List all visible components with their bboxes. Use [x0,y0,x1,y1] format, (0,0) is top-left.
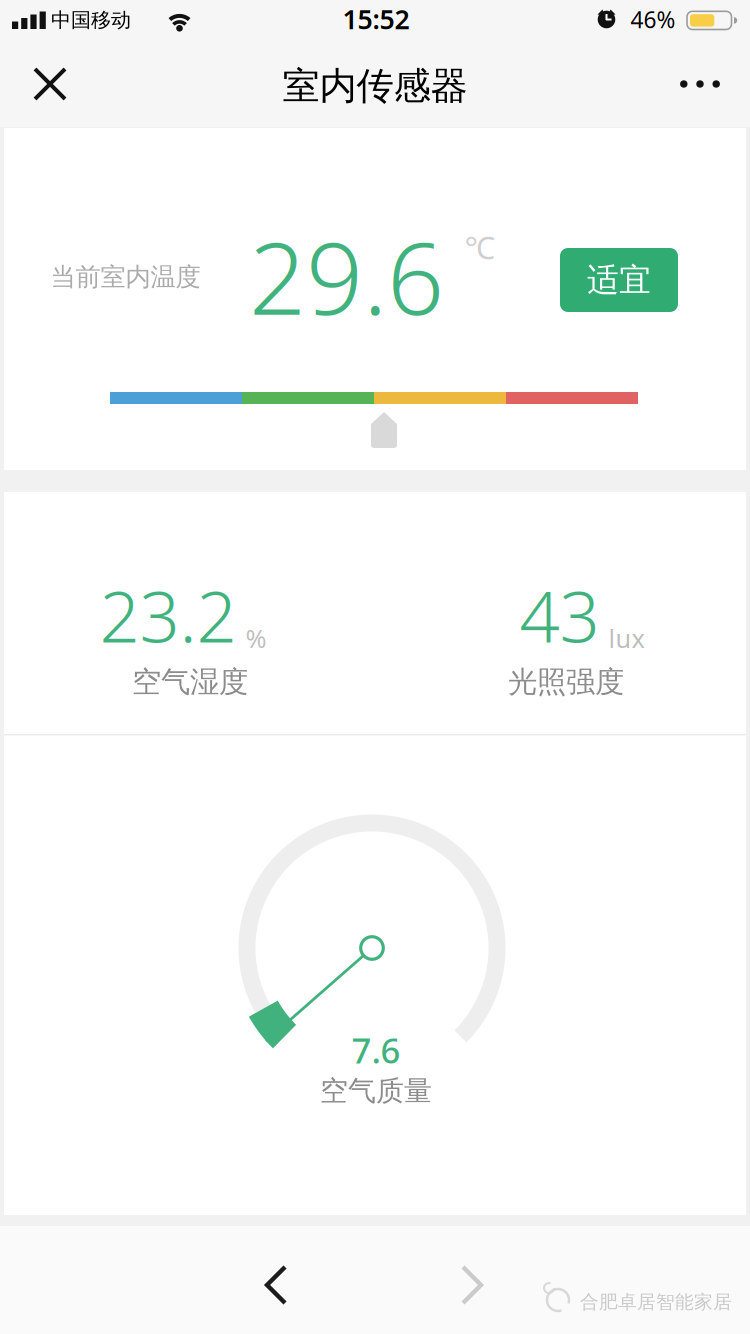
staticText: 23.2 [99,568,236,662]
button[interactable] [455,1261,489,1309]
staticText: 空气湿度 [132,664,248,700]
staticText: 中国移动 [51,8,131,32]
staticText: lux [608,621,644,655]
staticText: 当前室内温度 [50,261,200,292]
button[interactable] [259,1261,293,1309]
staticText: 46% [630,4,675,34]
button[interactable] [674,66,726,102]
staticText: 7.6 [351,1027,400,1073]
staticText: % [245,621,266,655]
staticText: 室内传感器 [282,63,467,109]
button[interactable]: 适宜 [560,248,678,312]
staticText: 适宜 [587,260,651,300]
staticText: 合肥卓居智能家居 [580,1290,732,1313]
staticText: 光照强度 [508,664,624,700]
staticText: ℃ [464,227,495,267]
button[interactable] [26,60,74,108]
staticText: 29.6 [249,210,444,342]
staticText: 43 [519,568,599,662]
staticText: 15:52 [342,1,409,37]
staticText: 空气质量 [320,1074,432,1108]
